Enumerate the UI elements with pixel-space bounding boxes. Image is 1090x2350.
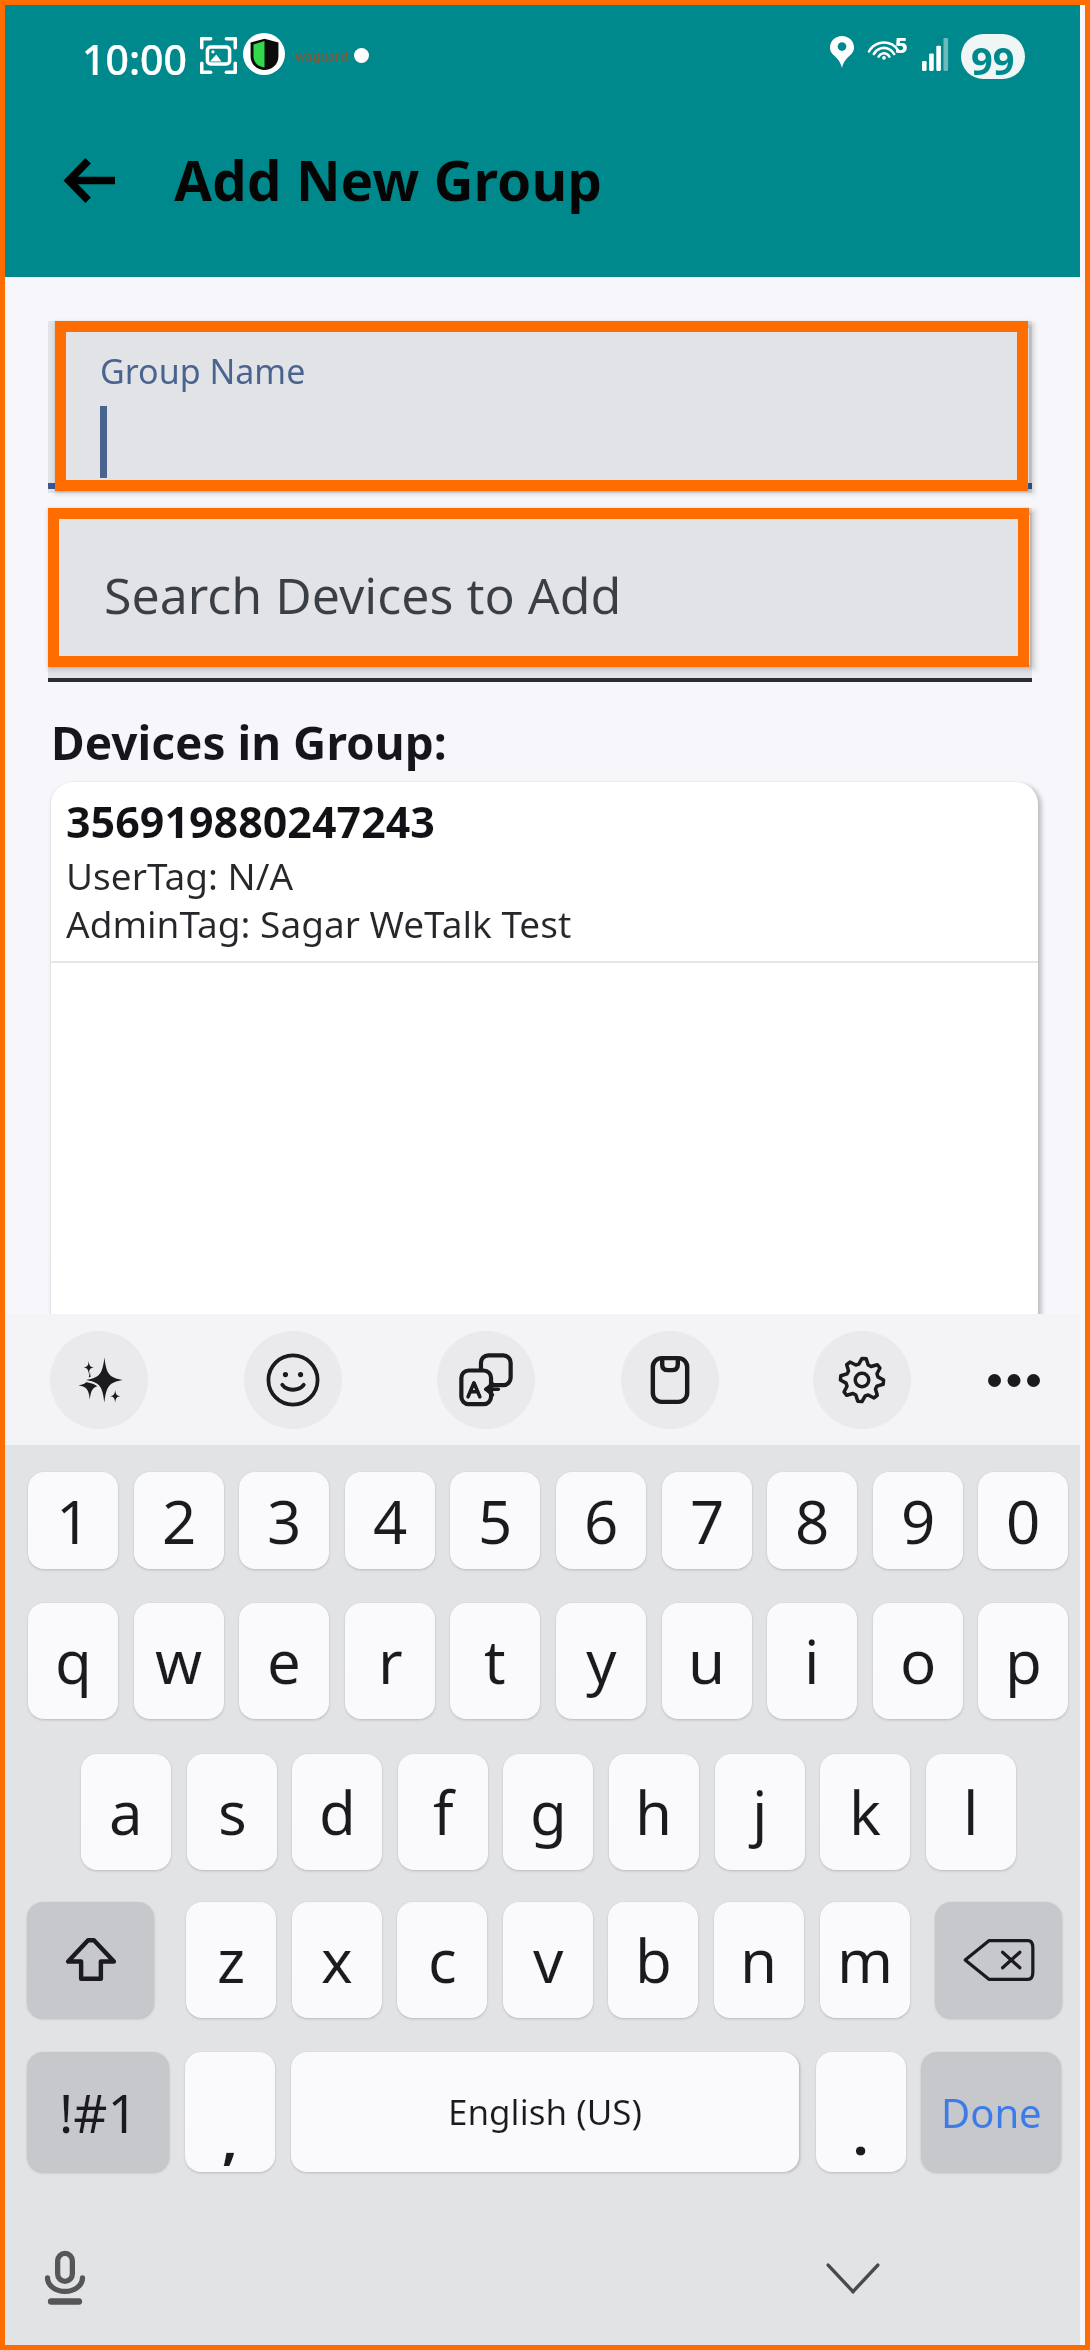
- button[interactable]: v: [503, 1902, 593, 2018]
- staticText: 6: [584, 1480, 619, 1562]
- staticText: x: [321, 1919, 353, 2001]
- button[interactable]: English (US): [291, 2052, 799, 2172]
- staticText: a: [109, 1771, 143, 1853]
- staticText: s: [218, 1771, 247, 1853]
- button[interactable]: 4: [345, 1472, 435, 1569]
- staticText: 1: [56, 1480, 91, 1562]
- button[interactable]: w: [134, 1603, 224, 1719]
- button[interactable]: Suggestions: [50, 1331, 148, 1429]
- staticText: .: [853, 2097, 869, 2171]
- button[interactable]: e: [239, 1603, 329, 1719]
- staticText: i: [804, 1620, 820, 1702]
- staticText: v: [533, 1919, 564, 2001]
- button[interactable]: 356919880247243: [51, 782, 1038, 1314]
- button[interactable]: s: [187, 1754, 277, 1870]
- button[interactable]: 7: [662, 1472, 752, 1569]
- button[interactable]: Back: [61, 150, 121, 210]
- button[interactable]: Clipboard: [621, 1331, 719, 1429]
- button[interactable]: g: [503, 1754, 593, 1870]
- staticText: n: [740, 1919, 778, 2001]
- button[interactable]: 0: [978, 1472, 1068, 1569]
- staticText: c: [428, 1919, 457, 2001]
- staticText: 8: [795, 1480, 830, 1562]
- staticText: waguard: [295, 48, 348, 64]
- staticText: 10:00: [82, 31, 187, 87]
- button[interactable]: 5: [450, 1472, 540, 1569]
- staticText: 356919880247243: [66, 792, 435, 851]
- button[interactable]: h: [609, 1754, 699, 1870]
- staticText: r: [378, 1620, 403, 1702]
- button[interactable]: 1: [28, 1472, 118, 1569]
- staticText: o: [900, 1620, 937, 1702]
- button[interactable]: j: [715, 1754, 805, 1870]
- button[interactable]: !#1: [27, 2052, 169, 2172]
- button[interactable]: k: [820, 1754, 910, 1870]
- button[interactable]: 9: [873, 1472, 963, 1569]
- button[interactable]: i: [767, 1603, 857, 1719]
- button[interactable]: d: [292, 1754, 382, 1870]
- button[interactable]: b: [608, 1902, 698, 2018]
- button[interactable]: Settings: [813, 1331, 911, 1429]
- staticText: p: [1005, 1620, 1042, 1702]
- staticText: 5: [478, 1480, 513, 1562]
- staticText: l: [963, 1771, 979, 1853]
- button[interactable]: p: [978, 1603, 1068, 1719]
- staticText: t: [484, 1620, 506, 1702]
- staticText: b: [635, 1919, 672, 2001]
- button[interactable]: r: [345, 1603, 435, 1719]
- button[interactable]: 2: [134, 1472, 224, 1569]
- button[interactable]: o: [873, 1603, 963, 1719]
- button[interactable]: Voice input: [30, 2243, 100, 2313]
- staticText: j: [752, 1771, 768, 1853]
- button[interactable]: t: [450, 1603, 540, 1719]
- staticText: m: [837, 1919, 894, 2001]
- staticText: Search Devices to Add: [104, 561, 622, 629]
- button[interactable]: x: [292, 1902, 382, 2018]
- button[interactable]: c: [397, 1902, 487, 2018]
- staticText: 0: [1006, 1480, 1041, 1562]
- staticText: f: [433, 1771, 454, 1853]
- button[interactable]: q: [28, 1603, 118, 1719]
- button[interactable]: u: [662, 1603, 752, 1719]
- staticText: ,: [222, 2101, 238, 2172]
- staticText: Devices in Group:: [51, 711, 447, 774]
- button[interactable]: Search Devices to Add field: [59, 519, 1018, 656]
- button[interactable]: m: [820, 1902, 910, 2018]
- button[interactable]: 3: [239, 1472, 329, 1569]
- button[interactable]: Done: [921, 2052, 1061, 2172]
- staticText: Add New Group: [174, 142, 602, 217]
- button[interactable]: ,: [185, 2052, 275, 2172]
- button[interactable]: 6: [556, 1472, 646, 1569]
- button[interactable]: Translate: [437, 1331, 535, 1429]
- staticText: q: [55, 1620, 92, 1702]
- button[interactable]: Backspace: [935, 1902, 1062, 2018]
- staticText: k: [849, 1771, 882, 1853]
- staticText: 7: [690, 1480, 725, 1562]
- staticText: !#1: [59, 2076, 138, 2148]
- button[interactable]: Hide keyboard: [818, 2243, 888, 2313]
- staticText: g: [530, 1771, 567, 1853]
- staticText: 2: [162, 1480, 197, 1562]
- staticText: UserTag: N/A: [66, 850, 294, 900]
- button[interactable]: a: [81, 1754, 171, 1870]
- button[interactable]: y: [556, 1603, 646, 1719]
- staticText: AdminTag: Sagar WeTalk Test: [66, 898, 572, 948]
- staticText: e: [267, 1620, 301, 1702]
- button[interactable]: f: [398, 1754, 488, 1870]
- staticText: u: [688, 1620, 726, 1702]
- staticText: 4: [373, 1480, 408, 1562]
- staticText: 5: [895, 29, 908, 59]
- button[interactable]: Emoji: [244, 1331, 342, 1429]
- staticText: w: [155, 1620, 203, 1702]
- button[interactable]: More options: [965, 1331, 1063, 1429]
- staticText: y: [586, 1620, 617, 1702]
- button[interactable]: l: [926, 1754, 1016, 1870]
- button[interactable]: Shift: [27, 1902, 154, 2018]
- button[interactable]: Group Name field: [66, 332, 1017, 480]
- button[interactable]: z: [186, 1902, 276, 2018]
- button[interactable]: n: [714, 1902, 804, 2018]
- button[interactable]: .: [816, 2052, 906, 2172]
- button[interactable]: 8: [767, 1472, 857, 1569]
- staticText: English (US): [448, 2088, 642, 2136]
- staticText: d: [319, 1771, 356, 1853]
